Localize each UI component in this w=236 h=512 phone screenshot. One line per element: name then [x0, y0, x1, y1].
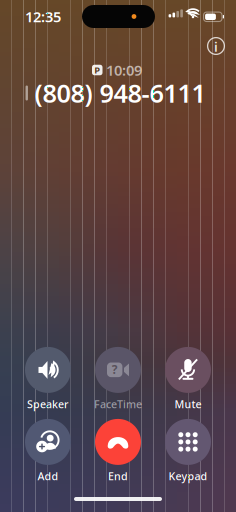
staticText: Speaker	[27, 397, 69, 411]
button[interactable]: Keypad	[153, 419, 223, 483]
staticText: i	[214, 38, 218, 55]
button[interactable]: ?	[83, 347, 153, 411]
button[interactable]: Call info	[202, 32, 230, 60]
staticText: (808) 948-6111	[34, 76, 205, 110]
staticText: Keypad	[168, 469, 207, 483]
button[interactable]: Speaker	[13, 347, 83, 411]
staticText: P	[94, 64, 100, 76]
staticText: ?	[112, 361, 118, 377]
staticText: Mute	[174, 397, 201, 411]
staticText: FaceTime	[94, 397, 142, 411]
button[interactable]: Mute	[153, 347, 223, 411]
staticText: 10:09	[106, 60, 142, 80]
button[interactable]: Add	[13, 419, 83, 483]
button[interactable]: End	[83, 419, 153, 483]
staticText: End	[108, 469, 128, 483]
staticText: Add	[37, 469, 58, 483]
staticText: 12:35	[25, 7, 61, 26]
